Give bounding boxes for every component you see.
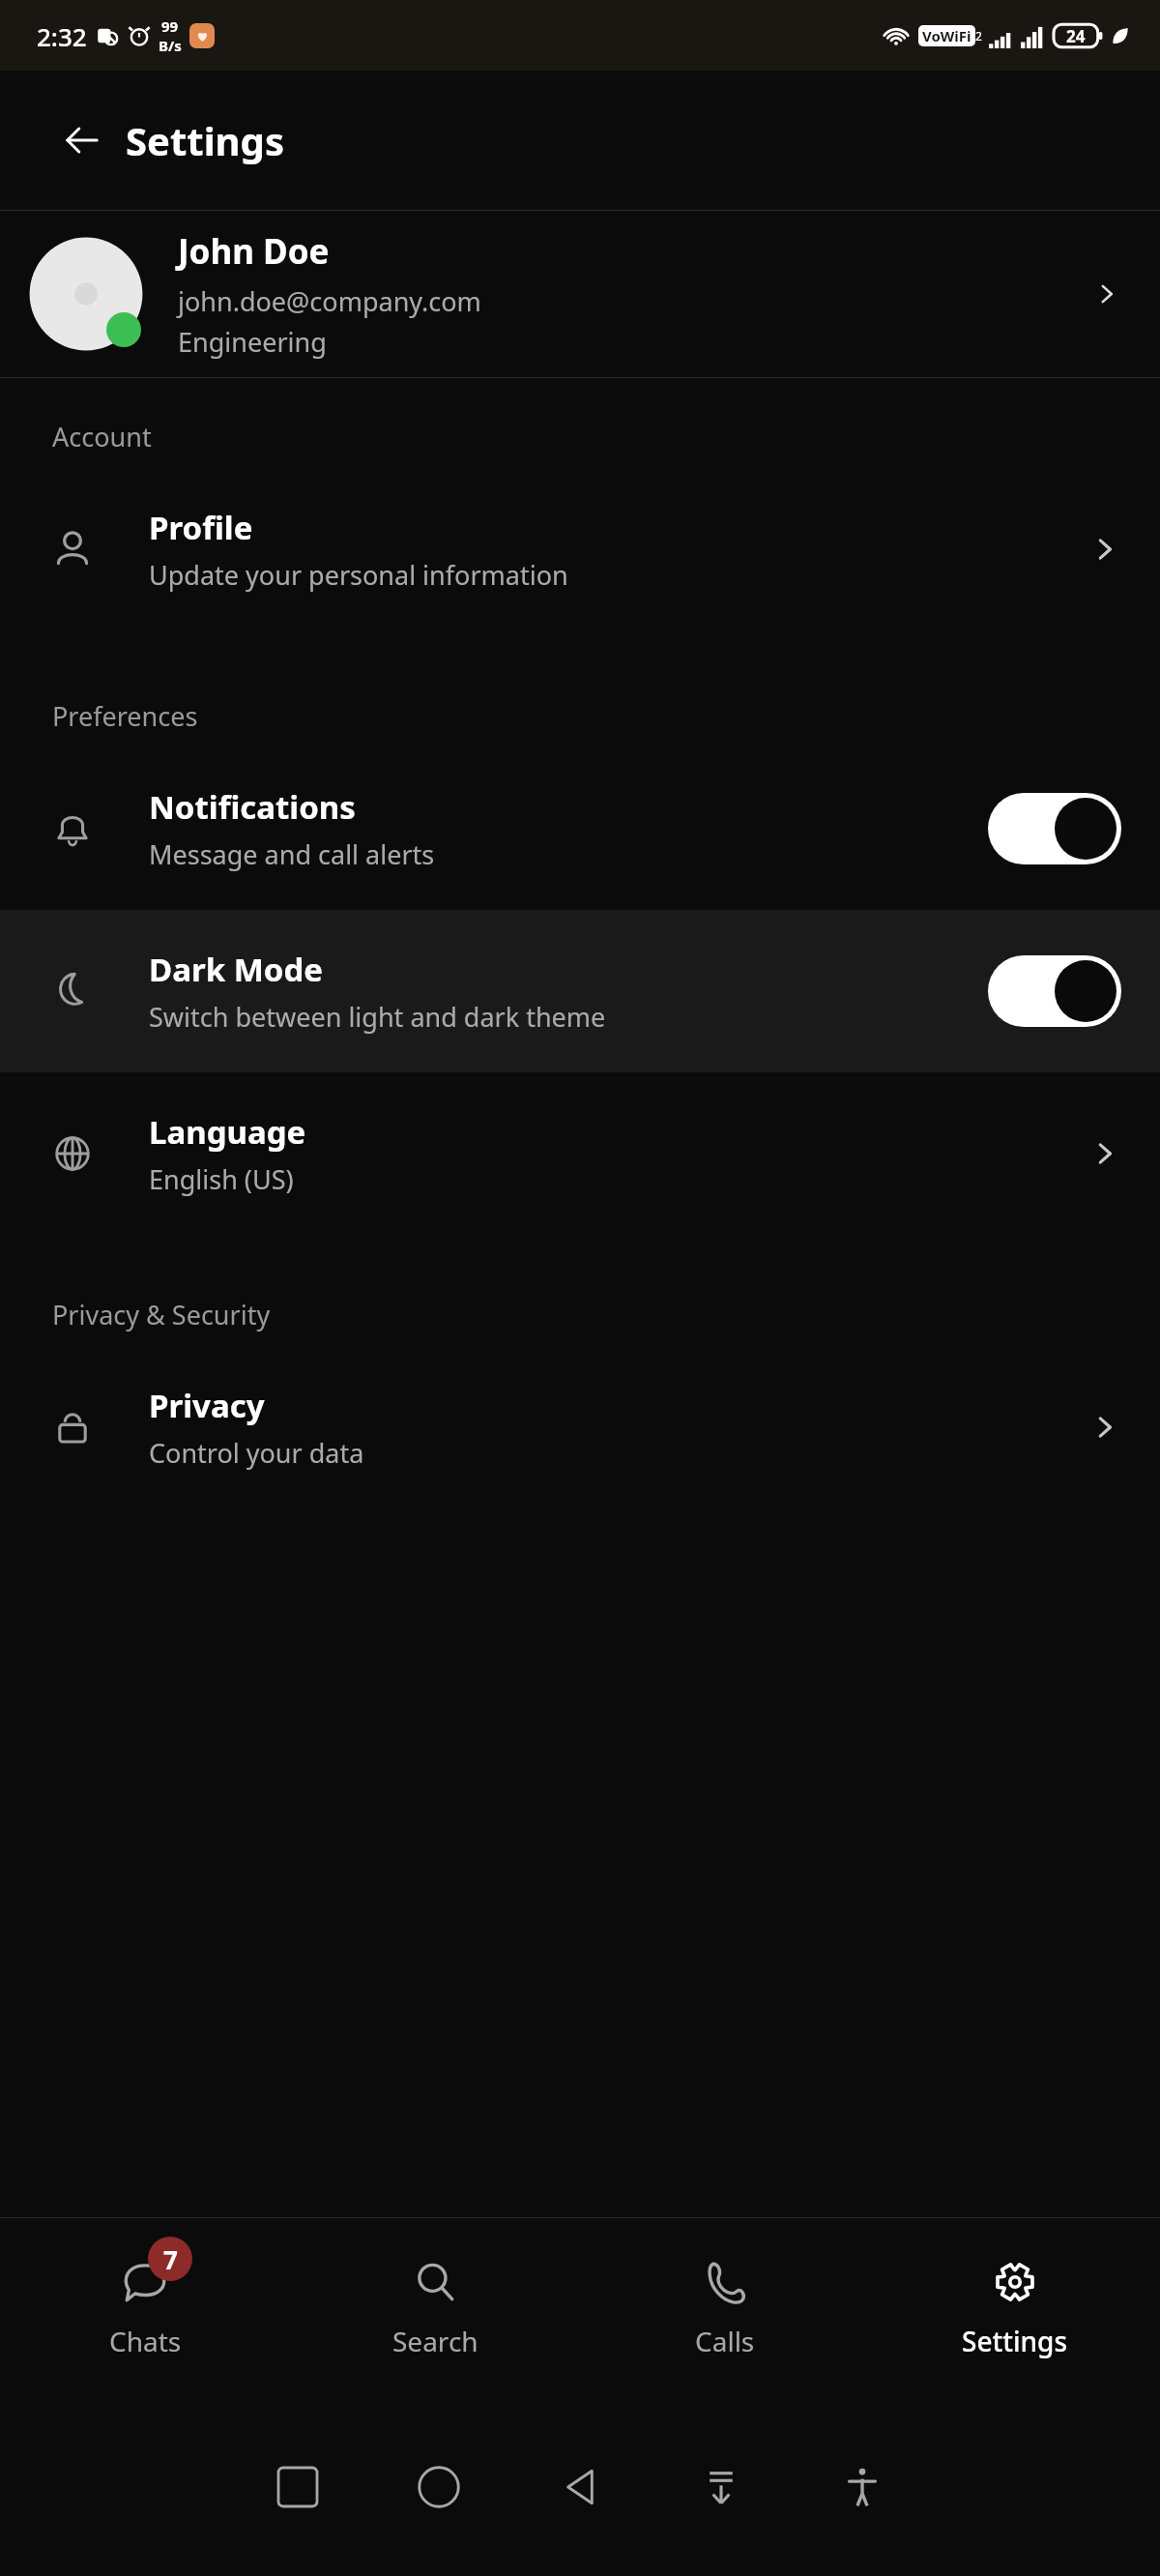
button[interactable]: Toggle bbox=[988, 955, 1121, 1027]
staticText: Calls bbox=[695, 2323, 755, 2359]
button[interactable]: Back bbox=[552, 2459, 608, 2515]
staticText: B/s bbox=[159, 36, 182, 55]
button[interactable]: Recents bbox=[270, 2459, 326, 2515]
button[interactable]: Language bbox=[0, 1072, 1160, 1235]
staticText: Account bbox=[52, 419, 152, 454]
staticText: Settings bbox=[962, 2323, 1068, 2359]
button[interactable]: Accessibility bbox=[834, 2459, 890, 2515]
button[interactable]: Hide bbox=[693, 2459, 749, 2515]
staticText: Language bbox=[149, 1110, 306, 1154]
staticText: Message and call alerts bbox=[149, 836, 435, 872]
staticText: Notifications bbox=[149, 785, 356, 829]
staticText: Switch between light and dark theme bbox=[149, 999, 606, 1035]
staticText: 99 bbox=[161, 16, 179, 36]
staticText: 24 bbox=[1066, 25, 1086, 47]
button[interactable]: Privacy bbox=[0, 1346, 1160, 1508]
button[interactable]: Toggle bbox=[988, 793, 1121, 864]
staticText: 2:32 bbox=[37, 19, 87, 53]
staticText: Control your data bbox=[149, 1435, 364, 1471]
staticText: Privacy bbox=[149, 1384, 265, 1427]
staticText: Update your personal information bbox=[149, 557, 568, 593]
staticText: VoWiFi bbox=[922, 26, 971, 45]
staticText: John Doe bbox=[178, 228, 330, 275]
button[interactable]: Settings bbox=[870, 2218, 1160, 2398]
staticText: English (US) bbox=[149, 1161, 294, 1197]
button[interactable]: 7 bbox=[0, 2218, 290, 2398]
button[interactable]: Dark Mode bbox=[0, 910, 1160, 1072]
button[interactable]: Notifications bbox=[0, 747, 1160, 910]
staticText: Preferences bbox=[52, 698, 198, 734]
staticText: Privacy & Security bbox=[52, 1297, 271, 1332]
button[interactable]: Home bbox=[411, 2459, 467, 2515]
staticText: Chats bbox=[109, 2323, 182, 2359]
button[interactable]: Calls bbox=[580, 2218, 870, 2398]
staticText: Search bbox=[392, 2323, 478, 2359]
staticText: john.doe@company.com bbox=[178, 283, 481, 319]
button[interactable]: Profile bbox=[0, 468, 1160, 630]
staticText: Profile bbox=[149, 506, 253, 549]
button[interactable]: Back bbox=[54, 112, 110, 168]
staticText: Dark Mode bbox=[149, 948, 324, 991]
staticText: Engineering bbox=[178, 324, 327, 360]
staticText: 7 bbox=[163, 2242, 178, 2276]
button[interactable]: John Doe bbox=[0, 211, 1160, 377]
staticText: Settings bbox=[126, 114, 284, 166]
button[interactable]: Search bbox=[290, 2218, 580, 2398]
staticText: 2 bbox=[975, 28, 982, 44]
